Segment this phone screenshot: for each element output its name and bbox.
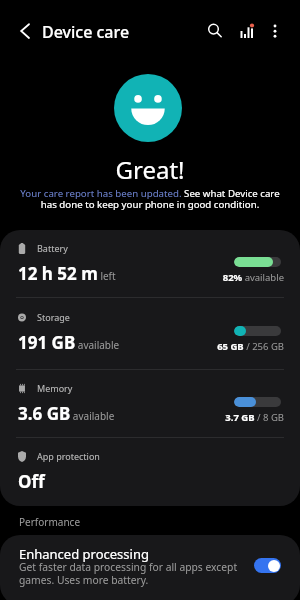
- button[interactable]: Enhanced processing: [0, 535, 300, 600]
- staticText: Great!: [0, 153, 300, 186]
- staticText: Performance: [19, 515, 81, 529]
- staticText: Memory: [37, 382, 73, 394]
- button[interactable]: Enhanced processing: [254, 558, 281, 573]
- button[interactable]: Navigate up: [6, 9, 50, 53]
- staticText: Enhanced processing: [19, 545, 149, 563]
- staticText: Battery: [37, 242, 68, 254]
- staticText: 3.7 GB / 8 GB: [0, 411, 284, 424]
- staticText: 3.6 GB available: [18, 402, 115, 425]
- staticText: Storage: [37, 311, 70, 323]
- button[interactable]: Usage statistics: [232, 9, 262, 39]
- staticText: Your care report has been updated. See w…: [0, 187, 300, 211]
- staticText: 12 h 52 m left: [18, 262, 116, 285]
- button[interactable]: Search: [195, 9, 232, 46]
- staticText: 191 GB available: [18, 331, 120, 354]
- staticText: App protection: [37, 450, 100, 462]
- staticText: Device care: [42, 21, 130, 43]
- staticText: Off: [18, 470, 45, 493]
- staticText: 82% available: [0, 271, 284, 284]
- button[interactable]: More options: [260, 9, 290, 39]
- staticText: 65 GB / 256 GB: [0, 340, 284, 353]
- staticText: Get faster data processing for all apps …: [19, 560, 238, 587]
